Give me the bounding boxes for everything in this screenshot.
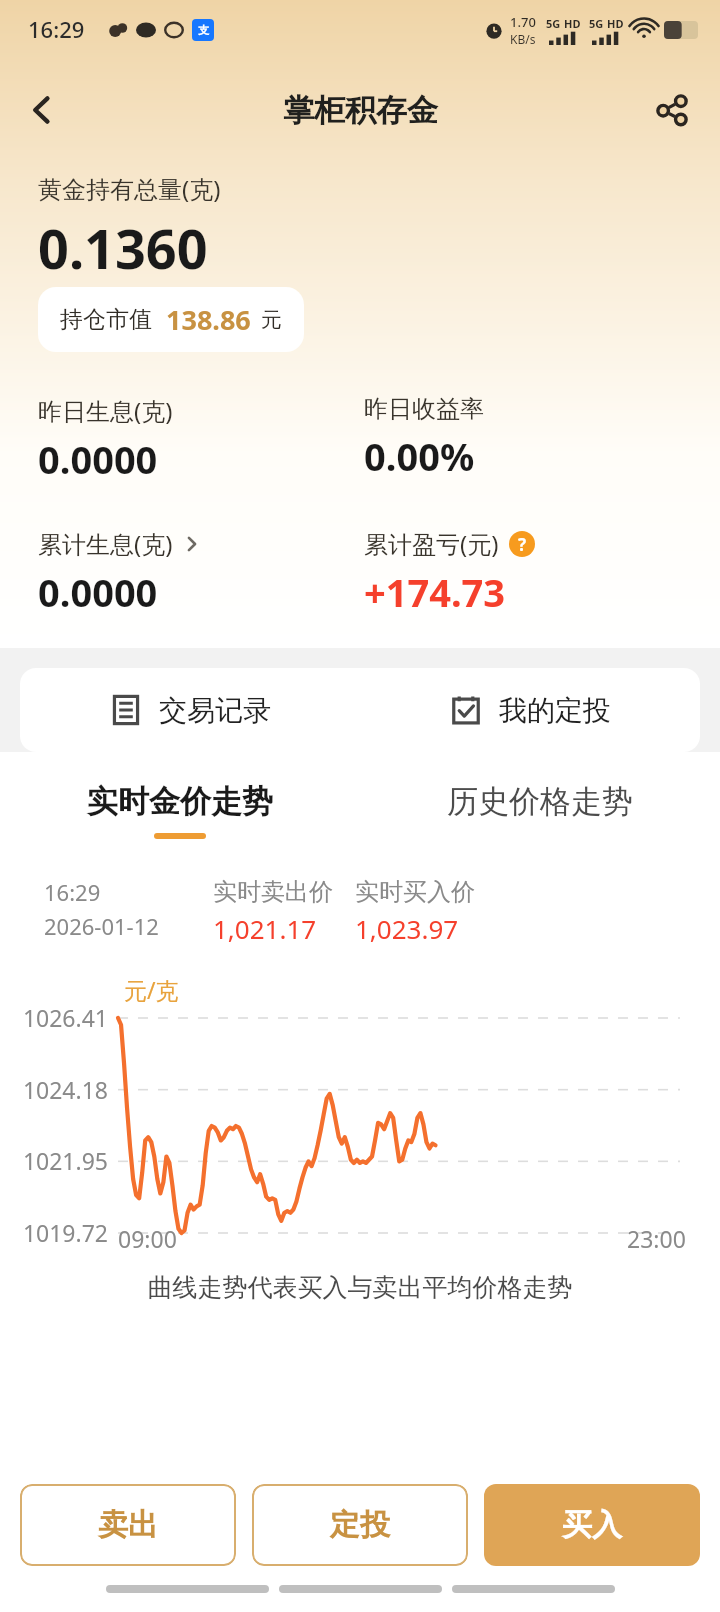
button[interactable]: Help — [509, 531, 535, 557]
button[interactable]: 交易记录 — [20, 668, 360, 752]
button[interactable]: 我的定投 — [360, 668, 700, 752]
staticText: 138.86 — [166, 301, 251, 338]
button[interactable]: Back — [12, 80, 72, 140]
staticText: 元/克 — [124, 974, 179, 1005]
staticText: 元 — [261, 307, 282, 333]
staticText: 持仓市值 — [60, 305, 152, 334]
staticText: 1024.18 — [14, 1074, 108, 1105]
staticText: +174.73 — [364, 566, 506, 618]
staticText: KB/s — [510, 31, 536, 47]
staticText: 1.70 — [510, 13, 536, 31]
button[interactable]: 卖出 — [20, 1484, 236, 1566]
staticText: HD — [607, 16, 624, 31]
staticText: HD — [564, 16, 581, 31]
staticText: 1026.41 — [14, 1002, 108, 1033]
staticText: 掌柜积存金 — [283, 91, 438, 130]
button[interactable]: 定投 — [252, 1484, 468, 1566]
staticText: 昨日收益率 — [364, 394, 484, 424]
staticText: 昨日生息(克) — [38, 394, 173, 427]
staticText: 5G — [546, 16, 561, 31]
staticText: 定投 — [330, 1506, 390, 1544]
staticText: 我的定投 — [499, 693, 611, 728]
staticText: 1,021.17 — [213, 911, 317, 946]
staticText: 16:29 — [28, 14, 85, 44]
staticText: 16:29 — [44, 877, 101, 907]
staticText: 实时金价走势 — [87, 782, 273, 821]
staticText: 23:00 — [627, 1223, 686, 1254]
staticText: 1021.95 — [14, 1145, 108, 1176]
button[interactable]: 买入 — [484, 1484, 700, 1566]
staticText: ? — [518, 533, 527, 556]
staticText: 0.0000 — [38, 433, 158, 485]
staticText: 0.0000 — [38, 566, 158, 618]
staticText: 实时买入价 — [355, 877, 475, 907]
button[interactable]: Share — [642, 80, 702, 140]
staticText: 0.1360 — [38, 211, 208, 285]
staticText: 曲线走势代表买入与卖出平均价格走势 — [0, 1272, 720, 1303]
staticText: 卖出 — [98, 1506, 158, 1544]
button[interactable]: 实时金价走势 — [0, 782, 360, 839]
staticText: 实时卖出价 — [213, 877, 333, 907]
staticText: 历史价格走势 — [447, 782, 633, 821]
staticText: 黄金持有总量(克) — [38, 172, 221, 205]
staticText: 累计生息(克) — [38, 527, 173, 560]
staticText: 1019.72 — [14, 1217, 108, 1248]
staticText: 5G — [589, 16, 604, 31]
staticText: 09:00 — [118, 1223, 177, 1254]
staticText: 买入 — [562, 1506, 622, 1544]
staticText: 交易记录 — [159, 693, 271, 728]
staticText: 累计盈亏(元) — [364, 527, 499, 560]
staticText: 0.00% — [364, 430, 475, 482]
staticText: 1,023.97 — [355, 911, 459, 946]
button[interactable]: 历史价格走势 — [360, 782, 720, 839]
staticText: 2026-01-12 — [44, 911, 159, 941]
staticText: 支 — [198, 23, 209, 37]
